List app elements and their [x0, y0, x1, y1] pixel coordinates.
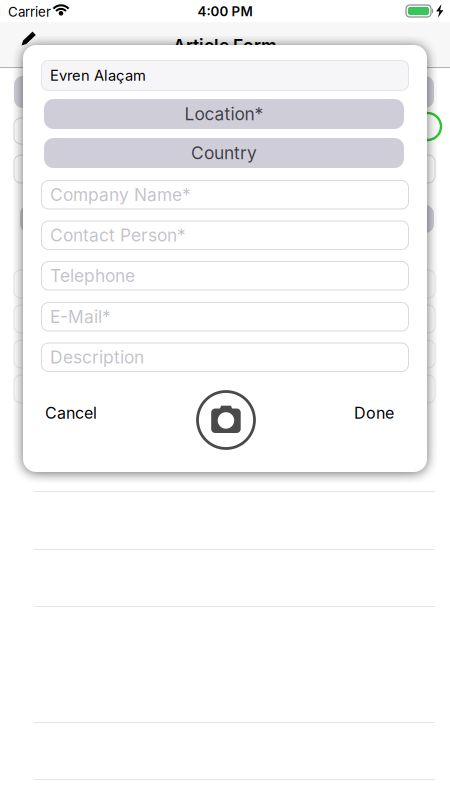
staticText: Cancel	[45, 403, 97, 422]
staticText: Telephone	[50, 265, 135, 286]
staticText: Contact Person*	[50, 225, 186, 245]
staticText: 4:00 PM	[197, 3, 252, 19]
staticText: Evren Alaçam	[50, 67, 146, 84]
staticText: Carrier	[8, 4, 51, 20]
staticText: Country	[191, 143, 257, 163]
staticText: E-Mail*	[50, 306, 111, 327]
staticText: Description	[50, 347, 144, 367]
staticText: Done	[354, 403, 394, 422]
staticText: Location*	[184, 104, 263, 124]
staticText: Company Name*	[50, 184, 191, 205]
staticText: Article Form	[173, 35, 277, 56]
